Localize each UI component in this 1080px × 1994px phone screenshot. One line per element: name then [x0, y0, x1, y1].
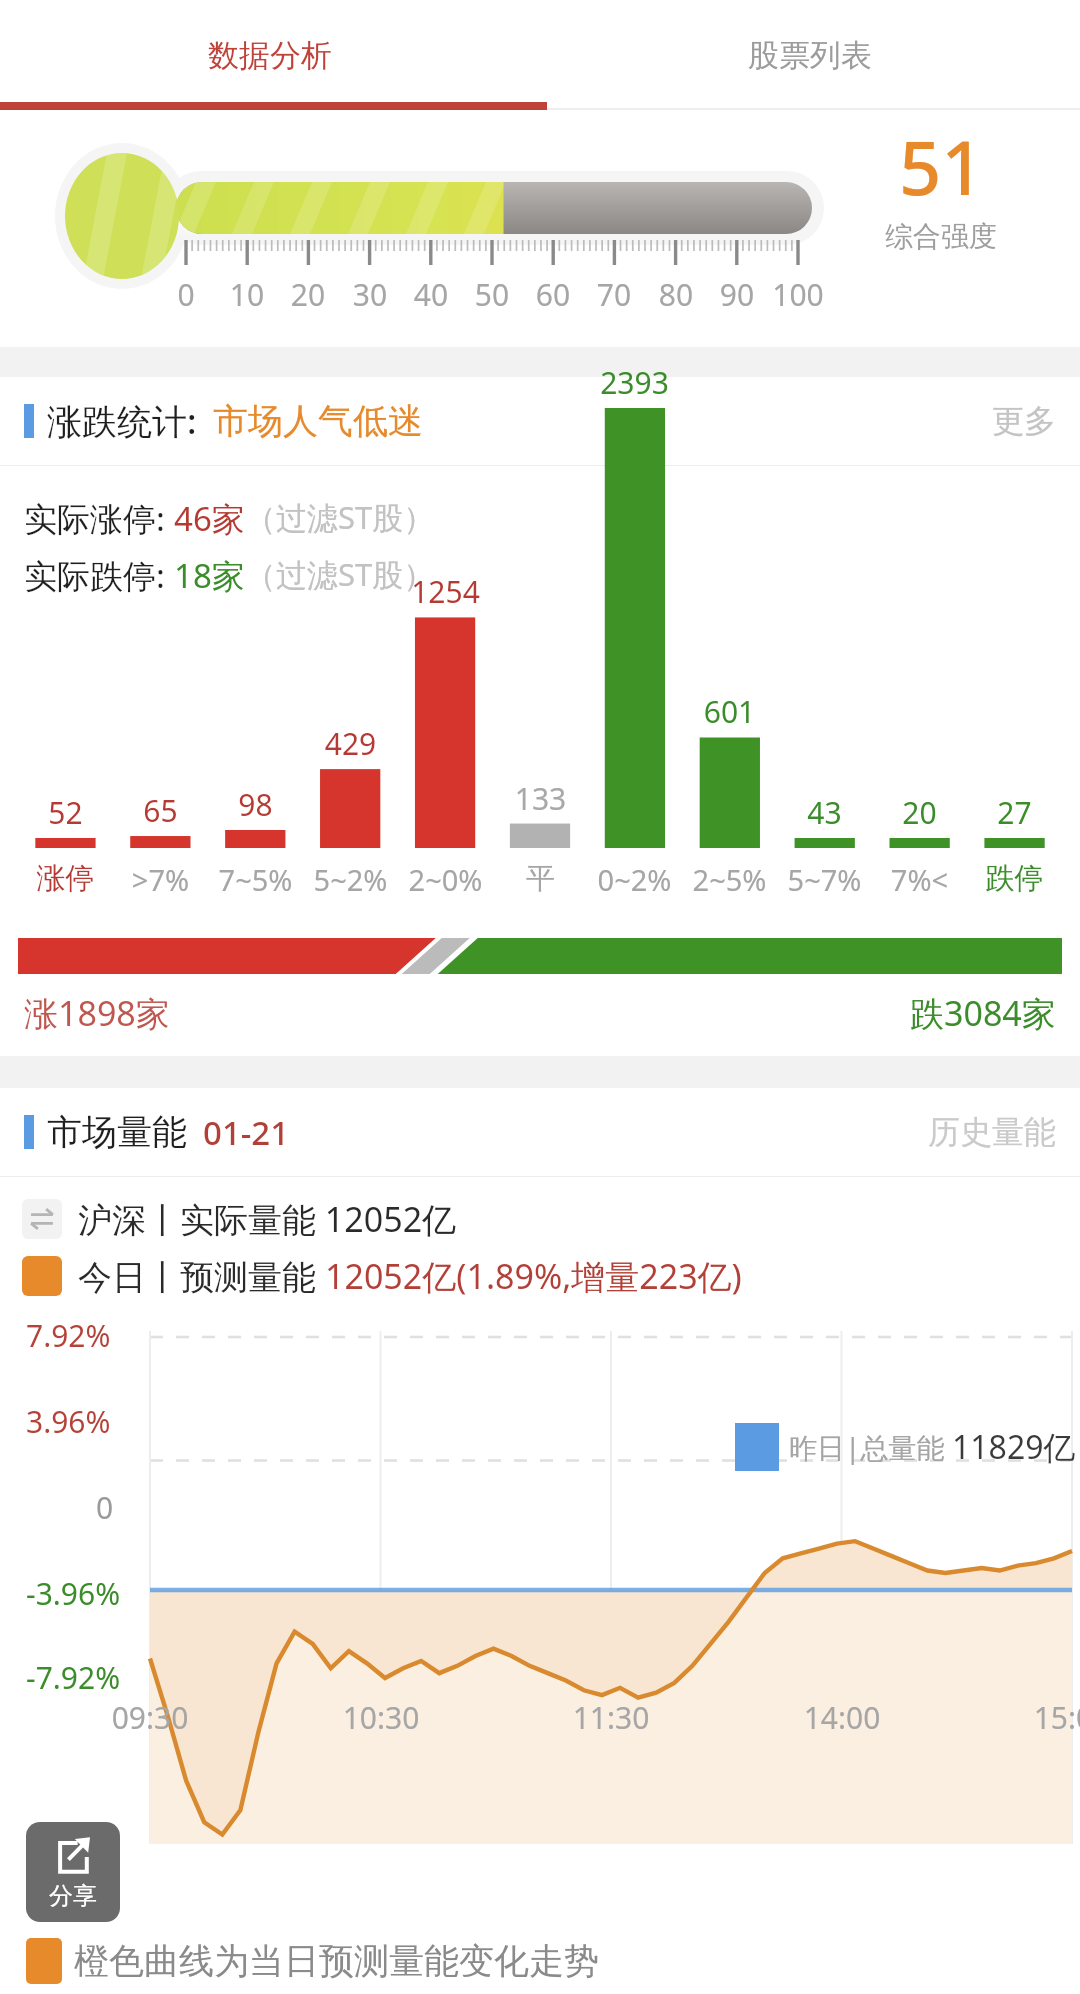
staticText: 70 — [574, 274, 654, 315]
staticText: 2~0% — [398, 860, 493, 899]
staticText: 涨停 — [18, 860, 113, 897]
staticText: 涨1898家 — [24, 990, 170, 1036]
staticText: 43 — [777, 792, 872, 833]
staticText: 5~7% — [777, 860, 872, 899]
staticText: 01-21 — [203, 1110, 290, 1155]
button[interactable]: 分享 — [26, 1822, 120, 1922]
button[interactable]: 数据分析 — [0, 0, 540, 110]
staticText: 2393 — [587, 362, 682, 403]
staticText: 7~5% — [208, 860, 303, 899]
staticText: 实际跌停: — [24, 553, 174, 598]
staticText: 18家 — [174, 553, 245, 598]
staticText: 98 — [208, 784, 303, 825]
staticText: -7.92% — [26, 1657, 121, 1698]
staticText: 09:30 — [88, 1697, 212, 1738]
staticText: 0 — [96, 1487, 114, 1528]
staticText: 133 — [493, 778, 588, 819]
staticText: 0~2% — [587, 860, 682, 899]
staticText: 429 — [303, 723, 398, 764]
staticText: 10:30 — [319, 1697, 443, 1738]
staticText: 65 — [113, 790, 208, 831]
staticText: 80 — [636, 274, 716, 315]
staticText: 7%< — [872, 860, 967, 899]
staticText: 历史量能 — [928, 1112, 1056, 1152]
staticText: 12052亿(1.89%,增量223亿) — [325, 1253, 742, 1299]
staticText: 数据分析 — [208, 36, 332, 75]
staticText: 100 — [758, 274, 838, 315]
staticText: -3.96% — [26, 1573, 121, 1614]
staticText: 5~2% — [303, 860, 398, 899]
staticText: 1254 — [398, 571, 493, 612]
staticText: 更多 — [992, 401, 1056, 441]
staticText: 实际涨停: — [24, 496, 174, 541]
staticText: 沪深丨实际量能 12052亿 — [78, 1196, 457, 1242]
staticText: 0 — [146, 274, 226, 315]
staticText: >7% — [113, 860, 208, 899]
staticText: 跌停 — [967, 860, 1062, 897]
staticText: 3.96% — [26, 1401, 111, 1442]
staticText: 11829亿 — [952, 1425, 1076, 1469]
staticText: 昨日|总量能 — [789, 1428, 952, 1466]
button[interactable]: 市场量能 — [0, 1088, 1080, 1176]
staticText: 20 — [268, 274, 348, 315]
staticText: 60 — [513, 274, 593, 315]
staticText: 50 — [452, 274, 532, 315]
staticText: 10 — [207, 274, 287, 315]
staticText: 11:30 — [549, 1697, 673, 1738]
staticText: 15:00 — [1010, 1697, 1080, 1738]
staticText: 今日丨预测量能 — [78, 1253, 325, 1299]
staticText: 7.92% — [26, 1315, 111, 1356]
staticText: 平 — [493, 860, 588, 897]
staticText: （过滤ST股） — [245, 553, 435, 595]
staticText: 综合强度 — [885, 219, 997, 254]
staticText: 90 — [697, 274, 777, 315]
staticText: 52 — [18, 792, 113, 833]
staticText: 分享 — [49, 1881, 97, 1911]
button[interactable]: 涨跌统计: — [0, 377, 1080, 465]
staticText: 股票列表 — [748, 36, 872, 75]
staticText: 跌3084家 — [910, 990, 1056, 1036]
staticText: 601 — [682, 691, 777, 732]
staticText: 51 — [899, 116, 984, 217]
staticText: （过滤ST股） — [245, 496, 435, 538]
staticText: 30 — [330, 274, 410, 315]
staticText: 20 — [872, 792, 967, 833]
button[interactable]: 股票列表 — [540, 0, 1080, 110]
staticText: 2~5% — [682, 860, 777, 899]
staticText: 涨跌统计: — [47, 397, 197, 445]
staticText: 46家 — [174, 496, 245, 541]
staticText: 市场量能 — [47, 1110, 187, 1154]
staticText: 14:00 — [780, 1697, 904, 1738]
staticText: 27 — [967, 792, 1062, 833]
staticText: 橙色曲线为当日预测量能变化走势 — [74, 1939, 599, 1983]
staticText: 40 — [391, 274, 471, 315]
staticText: 市场人气低迷 — [213, 399, 423, 443]
